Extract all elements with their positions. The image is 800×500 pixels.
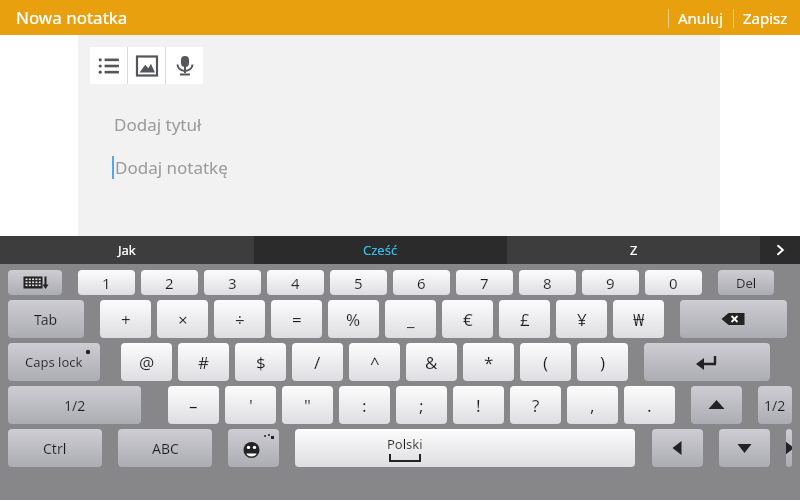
button[interactable]: Move left [652, 429, 703, 467]
staticText: Caps lock [25, 353, 83, 371]
staticText: Jak [118, 241, 136, 259]
staticText: Dodaj notatkę [115, 156, 228, 179]
button[interactable]: ! [453, 386, 504, 424]
staticText: 1/2 [764, 396, 786, 415]
staticText: 2 [165, 273, 174, 293]
button[interactable]: Checklist [90, 47, 127, 84]
staticText: £ [520, 308, 530, 331]
button[interactable]: Emoji [228, 429, 279, 467]
staticText: ₩ [633, 308, 645, 331]
button[interactable]: ( [520, 343, 571, 381]
button[interactable]: Backspace [680, 300, 787, 338]
button[interactable]: . [624, 386, 675, 424]
button[interactable]: × [157, 300, 208, 338]
button[interactable]: ₩ [613, 300, 664, 338]
button[interactable]: 1 [78, 270, 135, 295]
button[interactable]: Dodaj notatkę [78, 153, 720, 182]
button[interactable]: Enter [644, 343, 770, 381]
staticText: € [463, 308, 473, 331]
button[interactable]: ' [225, 386, 276, 424]
staticText: Anuluj [678, 8, 724, 28]
staticText: . [647, 394, 652, 417]
button[interactable]: ABC [118, 429, 212, 467]
button[interactable]: Move right [786, 429, 792, 467]
staticText: + [121, 308, 131, 331]
staticText: 1 [102, 273, 111, 293]
button[interactable]: ^ [349, 343, 400, 381]
button[interactable]: $ [235, 343, 286, 381]
staticText: – [189, 394, 198, 417]
staticText: % [346, 308, 361, 331]
button[interactable]: Zapisz [734, 1, 792, 35]
staticText: 1/2 [64, 396, 86, 415]
button[interactable]: Shift [691, 386, 742, 424]
button[interactable]: ; [396, 386, 447, 424]
button[interactable]: £ [499, 300, 550, 338]
button[interactable]: 7 [456, 270, 513, 295]
staticText: " [304, 394, 311, 417]
staticText: , [590, 394, 595, 417]
button[interactable]: # [178, 343, 229, 381]
button[interactable]: 6 [393, 270, 450, 295]
button[interactable]: , [567, 386, 618, 424]
staticText: Ctrl [43, 439, 67, 458]
button[interactable]: ) [577, 343, 628, 381]
staticText: ' [249, 394, 253, 417]
button[interactable]: Cześć [254, 236, 507, 264]
staticText: : [362, 394, 367, 417]
button[interactable]: * [463, 343, 514, 381]
button[interactable]: : [339, 386, 390, 424]
button[interactable]: 0 [645, 270, 702, 295]
button[interactable]: & [406, 343, 457, 381]
button[interactable]: Tab [8, 300, 84, 338]
button[interactable]: _ [385, 300, 436, 338]
staticText: ) [600, 351, 606, 374]
button[interactable]: Jak [0, 236, 254, 264]
button[interactable]: 4 [267, 270, 324, 295]
button[interactable]: / [292, 343, 343, 381]
staticText: ABC [152, 439, 179, 458]
staticText: @ [139, 351, 155, 374]
staticText: Tab [34, 310, 58, 329]
button[interactable]: – [168, 386, 219, 424]
button[interactable]: " [282, 386, 333, 424]
staticText: 6 [417, 273, 426, 293]
staticText: Z [630, 241, 638, 259]
button[interactable]: 3 [204, 270, 261, 295]
staticText: 7 [480, 273, 489, 293]
button[interactable]: 5 [330, 270, 387, 295]
staticText: Cześć [363, 241, 398, 259]
button[interactable]: 9 [582, 270, 639, 295]
button[interactable]: 2 [141, 270, 198, 295]
staticText: $ [256, 351, 266, 374]
staticText: ? [532, 394, 540, 417]
button[interactable]: Polski [295, 429, 635, 467]
button[interactable]: = [271, 300, 322, 338]
button[interactable]: Caps lock [8, 343, 100, 381]
button[interactable]: Hide keyboard [8, 270, 62, 295]
button[interactable]: + [100, 300, 151, 338]
button[interactable]: 8 [519, 270, 576, 295]
staticText: ; [419, 394, 424, 417]
button[interactable]: Move down [719, 429, 770, 467]
button[interactable]: Dodaj tytuł [78, 110, 720, 139]
button[interactable]: More suggestions [760, 236, 800, 264]
button[interactable]: Anuluj [669, 1, 733, 35]
staticText: 0 [669, 273, 678, 293]
button[interactable]: ¥ [556, 300, 607, 338]
button[interactable]: Z [507, 236, 760, 264]
button[interactable]: ÷ [214, 300, 265, 338]
button[interactable]: Ctrl [8, 429, 102, 467]
staticText: / [314, 351, 321, 374]
button[interactable]: Voice note [166, 47, 203, 84]
button[interactable]: % [328, 300, 379, 338]
button[interactable]: 1/2 [8, 386, 141, 424]
staticText: ¥ [577, 308, 587, 331]
button[interactable]: Insert image [128, 47, 165, 84]
staticText: Zapisz [743, 8, 788, 28]
button[interactable]: Del [718, 270, 774, 295]
button[interactable]: ? [510, 386, 561, 424]
button[interactable]: 1/2 [758, 386, 792, 424]
button[interactable]: € [442, 300, 493, 338]
button[interactable]: @ [121, 343, 172, 381]
